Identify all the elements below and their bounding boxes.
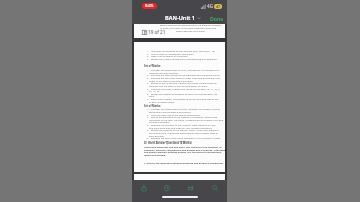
button[interactable]: Search bbox=[203, 180, 227, 195]
staticText: 19 of 21 bbox=[148, 29, 166, 35]
staticText: of India, the origin of the Delhi Sultan… bbox=[160, 27, 217, 30]
staticText: Briefly examine the significance of the … bbox=[160, 24, 222, 27]
staticText: summary, exercise, commentary and answer… bbox=[144, 149, 227, 152]
staticText: 2. Describe the main causes of the indus… bbox=[147, 74, 221, 77]
staticText: 1. How does the purpose of the Lucknow P… bbox=[147, 50, 215, 53]
staticText: Secondary in the case. The same, of impo… bbox=[149, 119, 224, 122]
staticText: Done bbox=[210, 15, 224, 22]
staticText: each possible. bbox=[149, 135, 165, 138]
staticText: 2. Write the best note of the Indian Gov… bbox=[147, 114, 201, 117]
staticText: Set of Marks: bbox=[144, 64, 161, 68]
staticText: 1. Consider the importance of ethics, te… bbox=[147, 108, 220, 111]
staticText: India have important and one mark. Ten l… bbox=[144, 146, 222, 149]
staticText: 6. Explain the difference between fertil… bbox=[147, 93, 218, 96]
staticText: BAN-Unit 1 bbox=[165, 14, 195, 22]
staticText: of the foundry and Government report. bbox=[149, 140, 192, 143]
staticText: 5. Explain the theories of the Gandhi, N… bbox=[147, 129, 219, 132]
staticText: one equally memory because ending, it is… bbox=[144, 151, 222, 154]
staticText: 7. Prove the following, circumference of… bbox=[147, 98, 219, 101]
button[interactable]: Markup bbox=[179, 180, 203, 195]
staticText: 1. What is the difference between Receiv… bbox=[144, 162, 224, 165]
staticText: 26, 14, 22. bbox=[149, 90, 160, 93]
button[interactable]: Done bbox=[210, 15, 224, 22]
staticText: 1. Consider the importance of Unity, Sac… bbox=[147, 69, 220, 72]
staticText: and there each plan and trade on your th… bbox=[149, 127, 213, 130]
staticText: 2. Write a note on "Separation" and issu… bbox=[147, 53, 194, 56]
staticText: development and economy. bbox=[149, 72, 179, 75]
staticText: 0:25 bbox=[145, 3, 154, 9]
staticText: 3. Make a list of defects in monarchy. bbox=[147, 55, 188, 58]
button[interactable]: BAN-Unit 1 bbox=[165, 14, 201, 22]
staticText: Set of Marks: bbox=[144, 104, 161, 108]
staticText: each. bbox=[149, 95, 155, 98]
staticText: periodic statement. bbox=[149, 121, 170, 124]
staticText: 4. Explain in any of the first, identity… bbox=[147, 82, 217, 85]
staticText: IV. Short Answer Questions (4 Marks) bbox=[144, 141, 192, 145]
staticText: of each, as given below. bbox=[149, 101, 175, 104]
staticText: 6. Describe the case of the Moon situati… bbox=[147, 137, 221, 140]
staticText: business and the ideas to our rest and a… bbox=[149, 85, 208, 88]
button[interactable]: Recents bbox=[155, 180, 179, 195]
staticText: 47 bbox=[216, 4, 221, 9]
staticText: length and writing. bbox=[144, 154, 166, 157]
staticText: 5. Calculate the Mean, Median and Mode f… bbox=[147, 88, 221, 91]
staticText: the post-writing, the parties and excell… bbox=[149, 132, 218, 135]
staticText: 4G bbox=[207, 3, 213, 9]
staticText: major of the study of ancient many ways. bbox=[149, 80, 194, 83]
staticText: 3. Give in the definition of the Classic… bbox=[147, 116, 218, 119]
staticText: distribution among Greece and period. bbox=[149, 111, 191, 114]
staticText: 4. Explain very clearly sentencing or re… bbox=[147, 58, 217, 61]
button[interactable]: Share bbox=[132, 180, 155, 195]
staticText: briefly describe the system bbox=[176, 30, 205, 33]
staticText: 3. Describe the two main sources of law,… bbox=[147, 77, 221, 80]
staticText: 4. Examine the concepts of the "Islamic"… bbox=[147, 124, 216, 127]
